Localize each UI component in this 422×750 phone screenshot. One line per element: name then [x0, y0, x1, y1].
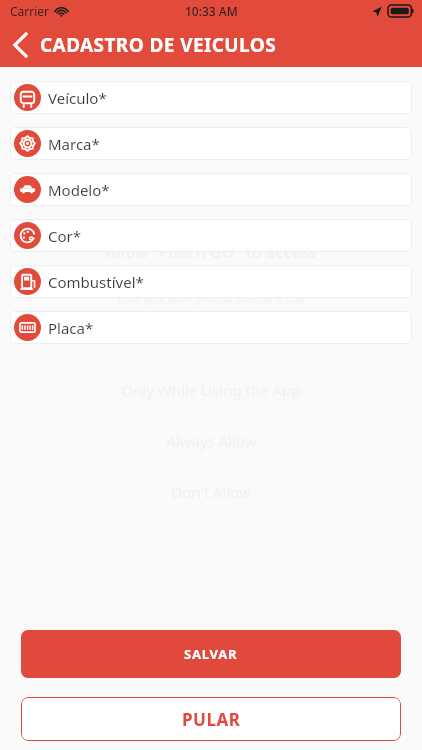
staticText: Carrier [10, 3, 50, 19]
staticText: Combustível* [48, 272, 144, 292]
button[interactable]: Marca* [10, 127, 412, 160]
staticText: Veículo* [48, 88, 107, 108]
staticText: CADASTRO DE VEICULOS [40, 32, 277, 58]
staticText: Placa* [48, 318, 94, 338]
staticText: Esse aplicativo precisa acessar a sua lo… [116, 291, 306, 336]
staticText: Cor* [48, 226, 82, 246]
button[interactable]: SALVAR [21, 630, 401, 678]
button[interactable]: PULAR [21, 697, 401, 741]
button[interactable]: Combustível* [10, 265, 412, 298]
staticText: SALVAR [184, 645, 238, 663]
button[interactable]: Cor* [10, 219, 412, 252]
button[interactable]: Veículo* [10, 81, 412, 114]
staticText: Allow "Fuel'n GO" to access your locatio… [105, 241, 317, 284]
button[interactable]: Placa* [10, 311, 412, 344]
staticText: Modelo* [48, 180, 110, 200]
button[interactable]: Modelo* [10, 173, 412, 206]
staticText: PULAR [182, 708, 241, 731]
button[interactable]: Back [0, 25, 40, 65]
staticText: 10:33 AM [185, 3, 238, 19]
staticText: Marca* [48, 134, 100, 154]
